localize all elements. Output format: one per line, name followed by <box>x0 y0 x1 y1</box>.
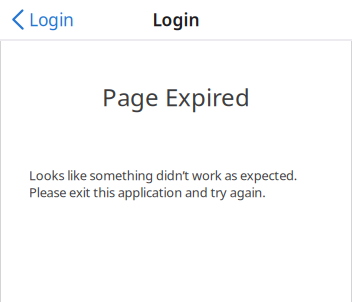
staticText: Page Expired <box>102 81 250 113</box>
staticText: Login <box>29 8 74 31</box>
staticText: Login <box>152 8 199 31</box>
staticText: Please exit this application and try aga… <box>29 184 265 201</box>
button[interactable]: Login <box>0 0 82 38</box>
staticText: Looks like something didn’t work as expe… <box>29 167 297 184</box>
